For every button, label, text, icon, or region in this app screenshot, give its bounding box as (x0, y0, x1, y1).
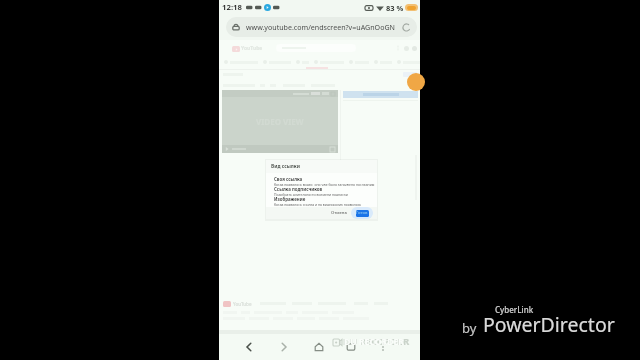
button[interactable]: Изображение (274, 196, 377, 206)
button[interactable]: Forward (275, 338, 293, 356)
staticText: YouTube (241, 45, 263, 52)
button[interactable]: Отмена (329, 209, 349, 217)
staticText: DU RECORDER (343, 335, 410, 348)
staticText: Когда правилось ссылка и на видеоролик п… (274, 202, 362, 206)
button[interactable]: Ссылка подписчиков (274, 186, 377, 196)
button[interactable]: Compose (407, 73, 425, 91)
staticText: Подобрать длительности времени подписки (274, 192, 348, 196)
button[interactable]: Готово (356, 210, 369, 217)
other: DU Recorder (333, 339, 342, 346)
staticText: 12:18 (222, 2, 243, 13)
button[interactable]: More options (374, 338, 392, 356)
button[interactable] (343, 91, 418, 98)
other: Fullscreen (330, 147, 335, 152)
staticText: Своя ссылка (274, 176, 303, 182)
staticText: YouTube (233, 301, 252, 307)
staticText: by (462, 319, 477, 337)
staticText: 83 % (386, 3, 404, 13)
staticText: www.youtube.com/endscreen?v=uAGnOoGN (246, 22, 395, 32)
staticText: Готово (356, 210, 369, 217)
button[interactable] (276, 44, 356, 52)
other: Site information (232, 23, 240, 31)
button[interactable]: Своя ссылка (274, 176, 377, 186)
staticText: CyberLink (495, 304, 534, 315)
staticText: Изображение (274, 196, 306, 202)
staticText: Вид ссылки (271, 163, 300, 170)
button[interactable]: Back (240, 338, 258, 356)
staticText: DU RECORDER (344, 336, 404, 348)
staticText: Ссылка подписчиков (274, 186, 323, 192)
staticText: Отмена (331, 210, 347, 216)
button[interactable]: VIDEO VIEW (222, 90, 338, 153)
button[interactable] (403, 72, 417, 77)
other: Reload page (403, 24, 410, 31)
button[interactable]: Home (310, 338, 328, 356)
other: Play (225, 147, 229, 151)
staticText: PowerDirector (483, 311, 615, 338)
staticText: Когда правилось видео, оно уже было загр… (274, 182, 375, 186)
button[interactable]: Site information (226, 17, 417, 37)
button[interactable]: Tabs (342, 338, 360, 356)
